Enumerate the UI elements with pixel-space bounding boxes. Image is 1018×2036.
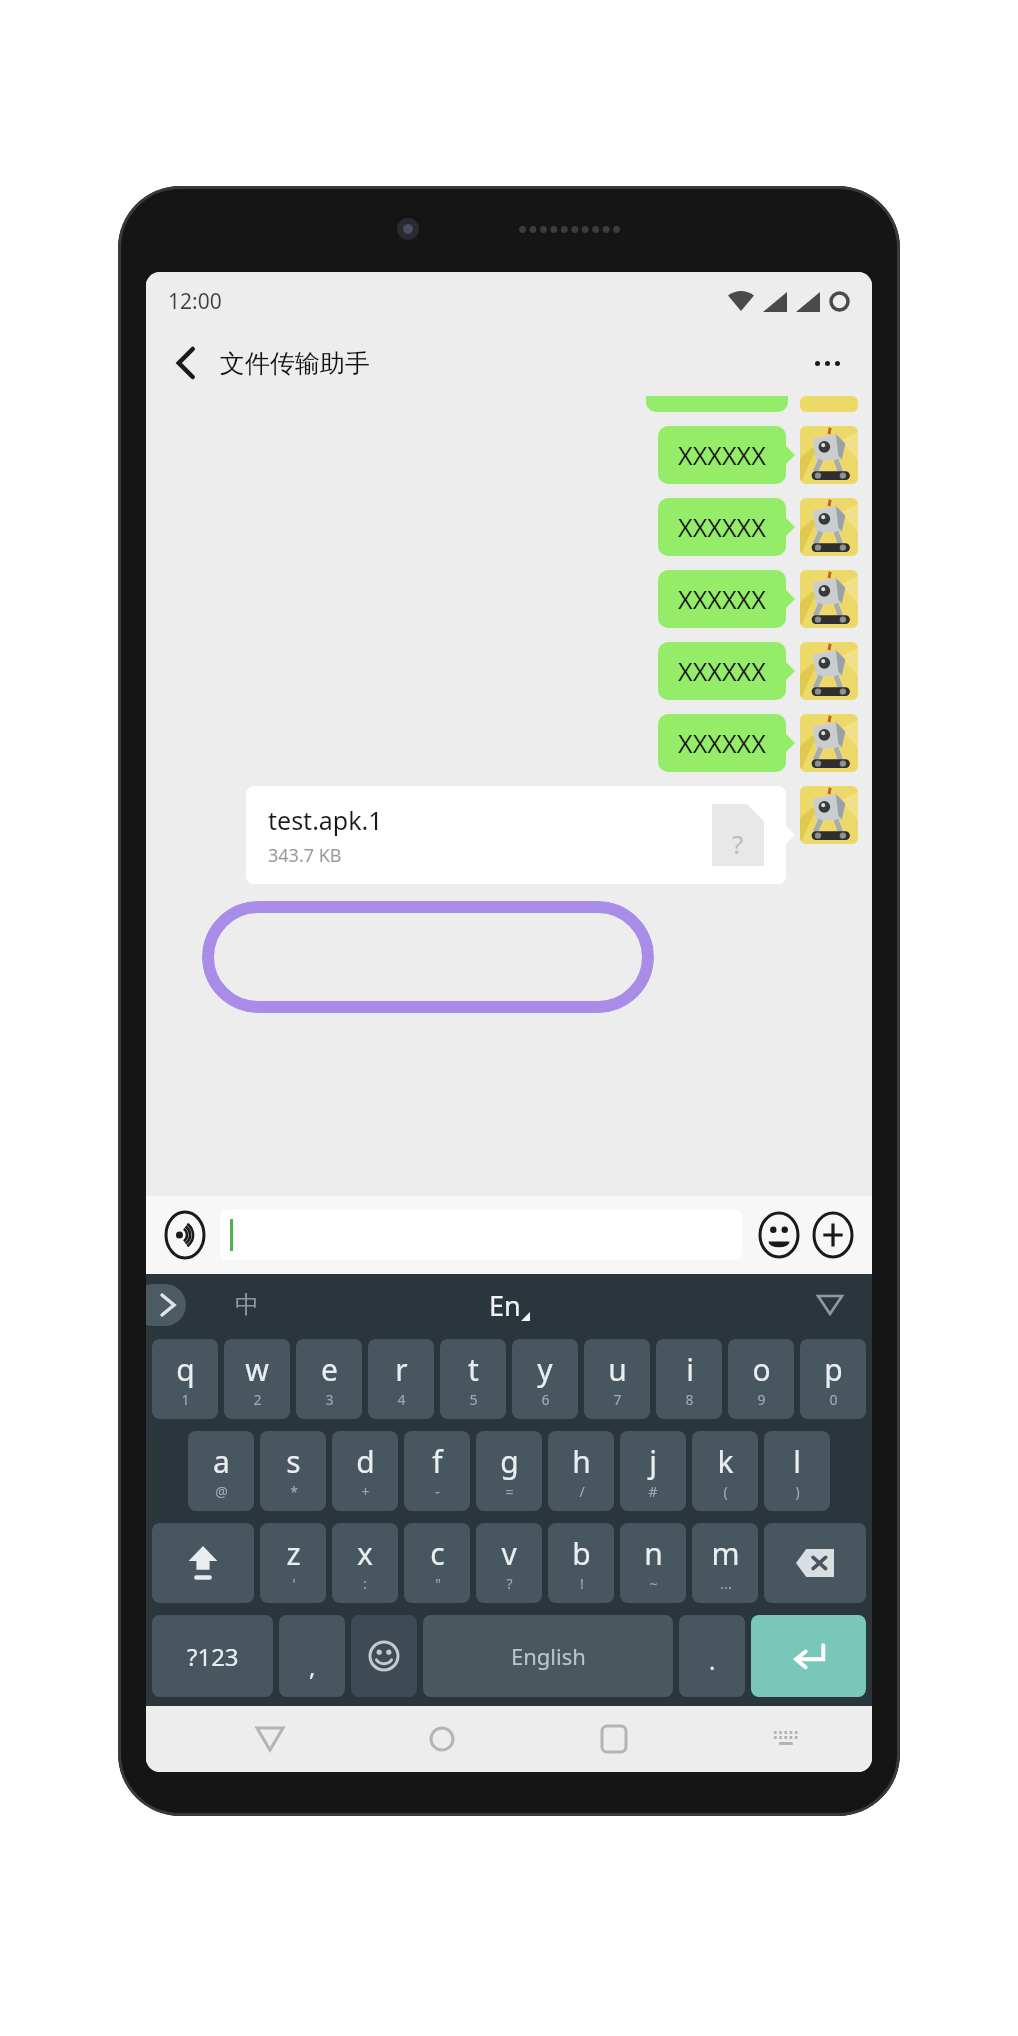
staticText: test.apk.1 bbox=[268, 803, 383, 837]
staticText: y bbox=[537, 1349, 553, 1390]
staticText: ) bbox=[795, 1482, 800, 1501]
staticText: n bbox=[644, 1533, 663, 1574]
staticText: + bbox=[361, 1482, 370, 1501]
staticText: s bbox=[286, 1441, 301, 1482]
button[interactable]: XXXXXX bbox=[658, 714, 795, 772]
button[interactable]: o bbox=[728, 1339, 794, 1419]
button[interactable]: Enter bbox=[751, 1615, 866, 1697]
button[interactable]: . bbox=[679, 1615, 745, 1697]
staticText: # bbox=[648, 1482, 658, 1501]
staticText: , bbox=[309, 1650, 316, 1683]
button[interactable]: p bbox=[800, 1339, 866, 1419]
button[interactable]: ?123 bbox=[152, 1615, 273, 1697]
staticText: k bbox=[717, 1441, 734, 1482]
button[interactable]: y bbox=[512, 1339, 578, 1419]
button[interactable]: a bbox=[188, 1431, 254, 1511]
staticText: 6 bbox=[541, 1390, 550, 1409]
button[interactable]: Expand toolbar bbox=[146, 1284, 186, 1326]
staticText: @ bbox=[215, 1482, 228, 1501]
button[interactable]: h bbox=[548, 1431, 614, 1511]
button[interactable]: Voice input bbox=[160, 1210, 210, 1260]
staticText: - bbox=[435, 1482, 440, 1501]
staticText: XXXXXX bbox=[678, 582, 766, 616]
staticText: 8 bbox=[685, 1390, 694, 1409]
staticText: 5 bbox=[469, 1390, 478, 1409]
staticText: x bbox=[357, 1533, 373, 1574]
staticText: XXXXXX bbox=[678, 438, 766, 472]
staticText: m bbox=[711, 1533, 740, 1574]
staticText: v bbox=[501, 1533, 517, 1574]
button[interactable]: test.apk.1 bbox=[246, 786, 795, 884]
staticText: ( bbox=[723, 1482, 728, 1501]
button[interactable]: t bbox=[440, 1339, 506, 1419]
staticText: En bbox=[489, 1287, 521, 1324]
button[interactable]: j bbox=[620, 1431, 686, 1511]
button[interactable]: v bbox=[476, 1523, 542, 1603]
button[interactable]: i bbox=[656, 1339, 722, 1419]
button[interactable]: Chinese input bbox=[224, 1282, 270, 1328]
staticText: 中 bbox=[235, 1290, 259, 1320]
staticText: z bbox=[286, 1533, 301, 1574]
button[interactable]: XXXXXX bbox=[658, 570, 795, 628]
button[interactable]: , bbox=[279, 1615, 345, 1697]
button[interactable]: XXXXXX bbox=[658, 498, 795, 556]
staticText: 4 bbox=[397, 1390, 406, 1409]
staticText: ' bbox=[292, 1574, 296, 1593]
button[interactable]: XXXXXX bbox=[658, 642, 795, 700]
staticText: o bbox=[752, 1349, 771, 1390]
staticText: p bbox=[824, 1349, 843, 1390]
button[interactable]: d bbox=[332, 1431, 398, 1511]
staticText: i bbox=[686, 1349, 694, 1390]
button[interactable]: g bbox=[476, 1431, 542, 1511]
button[interactable]: x bbox=[332, 1523, 398, 1603]
button[interactable]: e bbox=[296, 1339, 362, 1419]
staticText: English bbox=[511, 1641, 586, 1671]
button[interactable]: k bbox=[692, 1431, 758, 1511]
button[interactable]: Shift bbox=[152, 1523, 254, 1603]
button[interactable]: Back bbox=[242, 1711, 298, 1767]
staticText: q bbox=[176, 1349, 195, 1390]
button[interactable]: Recents bbox=[586, 1711, 642, 1767]
button[interactable]: c bbox=[404, 1523, 470, 1603]
staticText: j bbox=[649, 1441, 657, 1482]
button[interactable]: XXXXXX bbox=[658, 426, 795, 484]
button[interactable]: Back bbox=[164, 341, 208, 385]
staticText: 3 bbox=[325, 1390, 334, 1409]
button[interactable]: r bbox=[368, 1339, 434, 1419]
button[interactable]: m bbox=[692, 1523, 758, 1603]
button[interactable]: Home bbox=[414, 1711, 470, 1767]
button[interactable]: En bbox=[489, 1287, 530, 1324]
button[interactable]: Backspace bbox=[764, 1523, 866, 1603]
button[interactable]: s bbox=[260, 1431, 326, 1511]
button[interactable]: Hide keyboard bbox=[810, 1285, 850, 1325]
button[interactable]: f bbox=[404, 1431, 470, 1511]
button[interactable]: z bbox=[260, 1523, 326, 1603]
staticText: * bbox=[290, 1482, 298, 1501]
button[interactable]: More options bbox=[804, 340, 850, 386]
button[interactable]: n bbox=[620, 1523, 686, 1603]
staticText: XXXXXX bbox=[678, 654, 766, 688]
staticText: w bbox=[245, 1349, 269, 1390]
button[interactable]: More bbox=[808, 1210, 858, 1260]
staticText: XXXXXX bbox=[678, 726, 766, 760]
button[interactable]: Switch keyboard bbox=[758, 1711, 814, 1767]
button[interactable]: Emoji keyboard bbox=[351, 1615, 417, 1697]
button[interactable]: q bbox=[152, 1339, 218, 1419]
staticText: u bbox=[608, 1349, 627, 1390]
staticText: ... bbox=[720, 1574, 732, 1593]
staticText: ?123 bbox=[187, 1640, 239, 1673]
button[interactable]: b bbox=[548, 1523, 614, 1603]
button[interactable]: u bbox=[584, 1339, 650, 1419]
staticText: ? bbox=[732, 826, 744, 861]
button[interactable]: w bbox=[224, 1339, 290, 1419]
staticText: g bbox=[500, 1441, 519, 1482]
button[interactable]: l bbox=[764, 1431, 830, 1511]
staticText: e bbox=[321, 1349, 338, 1390]
staticText: " bbox=[435, 1574, 441, 1593]
staticText: 文件传输助手 bbox=[220, 348, 370, 379]
button[interactable]: English bbox=[423, 1615, 673, 1697]
button[interactable]: Emoji bbox=[754, 1210, 804, 1260]
button[interactable] bbox=[220, 1210, 742, 1260]
staticText: 1 bbox=[181, 1390, 190, 1409]
staticText: b bbox=[572, 1533, 591, 1574]
